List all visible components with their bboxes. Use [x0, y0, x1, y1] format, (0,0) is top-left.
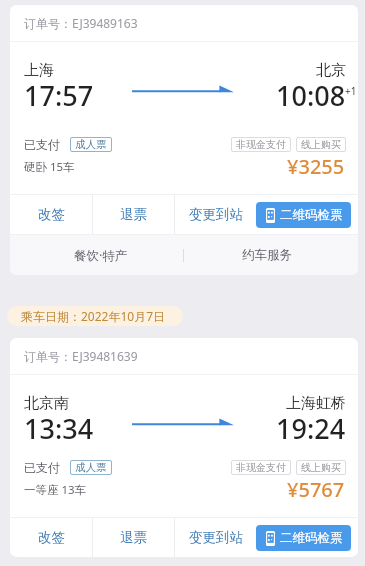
button[interactable]: 改签 — [10, 195, 92, 234]
staticText: 硬卧 15车 — [24, 159, 75, 175]
button[interactable]: 退票 — [93, 195, 174, 234]
staticText: 订单号：EJ39489163 — [24, 15, 138, 31]
button[interactable]: 上海 — [10, 42, 358, 194]
staticText: +1 — [345, 84, 357, 98]
other: QR code — [266, 531, 275, 546]
button[interactable]: 北京南 — [10, 375, 358, 517]
staticText: 变更到站 — [189, 206, 243, 223]
staticText: 改签 — [38, 206, 65, 223]
staticText: 非现金支付 — [236, 461, 286, 474]
button[interactable]: 乘车日期：2022年10月7日 — [7, 306, 183, 326]
staticText: ¥3255 — [287, 153, 345, 180]
staticText: 退票 — [120, 206, 147, 223]
staticText: ¥5767 — [287, 476, 345, 503]
staticText: 餐饮·特产 — [74, 247, 128, 264]
button[interactable]: 订单号：EJ39489163 — [10, 5, 358, 41]
button[interactable]: 退票 — [93, 518, 174, 557]
button[interactable]: 订单号：EJ39481639 — [10, 338, 358, 374]
staticText: 19:24 — [276, 410, 346, 447]
other: QR code — [266, 208, 275, 223]
button[interactable]: QR code — [256, 202, 351, 228]
button[interactable]: 约车服务 — [184, 235, 358, 275]
staticText: 北京 — [316, 61, 346, 80]
staticText: 乘车日期：2022年10月7日 — [21, 308, 166, 324]
staticText: 非现金支付 — [236, 138, 286, 151]
staticText: 已支付 — [24, 137, 60, 152]
button[interactable]: QR code — [256, 525, 351, 551]
staticText: 10:08 — [276, 77, 346, 114]
staticText: 一等座 13车 — [24, 482, 87, 498]
button[interactable]: 改签 — [10, 518, 92, 557]
staticText: 已支付 — [24, 460, 60, 475]
staticText: 13:34 — [24, 410, 94, 447]
button[interactable]: 餐饮·特产 — [10, 235, 183, 275]
staticText: 退票 — [120, 529, 147, 546]
staticText: 上海虹桥 — [286, 394, 346, 413]
staticText: 17:57 — [24, 77, 94, 114]
staticText: 订单号：EJ39481639 — [24, 348, 138, 364]
staticText: 线上购买 — [301, 461, 341, 474]
staticText: 成人票 — [75, 461, 107, 474]
staticText: 二维码检票 — [280, 530, 343, 546]
staticText: 成人票 — [75, 138, 107, 151]
staticText: 二维码检票 — [280, 207, 343, 223]
staticText: 北京南 — [24, 394, 69, 413]
button[interactable]: 变更到站 — [175, 518, 256, 557]
staticText: 改签 — [38, 529, 65, 546]
staticText: 上海 — [24, 61, 54, 80]
button[interactable]: 变更到站 — [175, 195, 256, 234]
staticText: 约车服务 — [242, 247, 292, 263]
staticText: 线上购买 — [301, 138, 341, 151]
staticText: 变更到站 — [189, 529, 243, 546]
